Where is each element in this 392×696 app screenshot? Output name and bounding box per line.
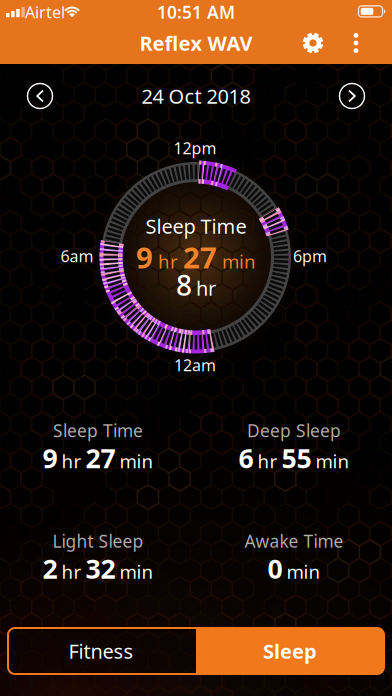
staticText: Reflex WAV [139, 30, 252, 56]
staticText: hr [158, 249, 178, 273]
staticText: min [119, 449, 153, 473]
staticText: hr [61, 559, 81, 584]
staticText: 9 [136, 237, 153, 276]
staticText: 24 Oct 2018 [141, 83, 250, 109]
staticText: Airtel [25, 1, 65, 23]
staticText: 9 [42, 440, 57, 476]
staticText: Sleep [263, 638, 317, 664]
staticText: Deep Sleep [247, 419, 341, 442]
staticText: 0 [267, 551, 282, 586]
button[interactable] [339, 83, 364, 108]
staticText: 12pm [173, 137, 216, 159]
staticText: min [222, 249, 256, 273]
staticText: hr [257, 449, 277, 473]
staticText: min [286, 559, 320, 584]
staticText: 2 [42, 551, 57, 586]
staticText: 8 [176, 266, 192, 304]
staticText: 27 [85, 440, 115, 476]
button[interactable]: Sleep [198, 629, 382, 673]
staticText: Awake Time [244, 529, 343, 552]
staticText: 27 [183, 237, 217, 276]
staticText: 6 [238, 440, 253, 476]
button[interactable] [302, 32, 324, 54]
staticText: 10:51 AM [157, 0, 235, 23]
staticText: 32 [85, 551, 115, 586]
staticText: Light Sleep [52, 529, 143, 552]
staticText: min [119, 559, 153, 584]
staticText: 55 [281, 440, 311, 476]
button[interactable]: Fitness [9, 629, 193, 673]
button[interactable] [0, 0, 392, 696]
button[interactable] [347, 33, 365, 53]
staticText: 6pm [293, 245, 327, 267]
button[interactable] [27, 83, 52, 108]
staticText: 6am [60, 245, 93, 267]
staticText: hr [61, 449, 81, 473]
staticText: hr [196, 275, 216, 301]
staticText: min [315, 449, 349, 473]
staticText: Fitness [68, 638, 133, 664]
staticText: Sleep Time [145, 213, 246, 239]
staticText: Sleep Time [53, 419, 143, 442]
staticText: 12am [174, 354, 216, 376]
